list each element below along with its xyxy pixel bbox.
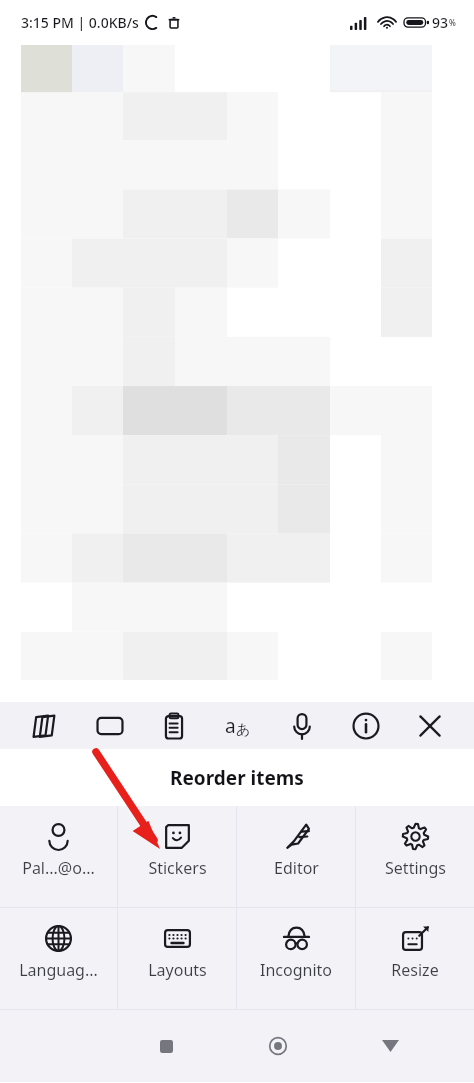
- staticText: a: [225, 713, 236, 739]
- staticText: 93: [432, 13, 449, 32]
- staticText: 3:15 PM | 0.0KB/s: [21, 13, 139, 32]
- staticText: %: [449, 17, 456, 28]
- staticText: Reorder items: [170, 765, 304, 791]
- staticText: あ: [236, 721, 251, 739]
- staticText: Incognito: [260, 959, 332, 981]
- staticText: Pal...@o...: [22, 857, 95, 879]
- staticText: Stickers: [148, 857, 207, 879]
- button[interactable]: Editor: [237, 806, 355, 907]
- button[interactable]: Back: [334, 1010, 446, 1082]
- button[interactable]: Clipboard: [142, 702, 206, 749]
- button[interactable]: Settings: [356, 806, 474, 907]
- button[interactable]: Layouts: [118, 908, 236, 1009]
- button[interactable]: Languages: [0, 908, 117, 1009]
- button[interactable]: Resize: [356, 908, 474, 1009]
- button[interactable]: Voice input: [270, 702, 334, 749]
- staticText: Layouts: [148, 959, 207, 981]
- staticText: Languag...: [19, 959, 98, 981]
- staticText: Resize: [391, 959, 439, 981]
- button[interactable]: Info: [334, 702, 398, 749]
- button[interactable]: Incognito: [237, 908, 355, 1009]
- button[interactable]: Translate: [206, 702, 270, 749]
- button[interactable]: Stickers: [118, 806, 236, 907]
- staticText: Editor: [274, 857, 319, 879]
- button[interactable]: Themes: [12, 702, 77, 749]
- button[interactable]: Palette account: [0, 806, 117, 907]
- button[interactable]: Recents: [111, 1010, 222, 1082]
- staticText: Settings: [385, 857, 446, 879]
- button[interactable]: GIF: [77, 702, 142, 749]
- button[interactable]: Home: [222, 1010, 334, 1082]
- button[interactable]: Close: [398, 702, 462, 749]
